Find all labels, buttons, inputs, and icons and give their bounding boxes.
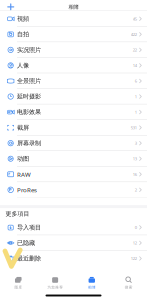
button[interactable]: 导入项目 [0, 220, 147, 235]
staticText: 图库 [14, 285, 22, 289]
button[interactable]: 为您推荐 [37, 275, 74, 290]
staticText: 6 [135, 78, 137, 84]
button[interactable]: 截屏 [0, 120, 147, 135]
button[interactable]: 相簿 [73, 275, 110, 290]
staticText: 动图 [17, 155, 29, 163]
staticText: 相簿 [68, 3, 78, 10]
button[interactable]: 屏幕录制 [0, 135, 147, 151]
staticText: 已隐藏 [17, 239, 35, 247]
staticText: 搜索 [125, 285, 133, 289]
button[interactable]: 电影效果 [0, 104, 147, 120]
staticText: 自拍 [17, 30, 29, 38]
staticText: 531 [131, 125, 137, 130]
staticText: 1 [135, 94, 137, 99]
staticText: 更多項目 [5, 210, 29, 218]
staticText: 13 [133, 156, 137, 161]
staticText: 22 [133, 47, 137, 53]
button[interactable]: 視頻 [0, 11, 147, 27]
button[interactable]: 全景照片 [0, 73, 147, 89]
staticText: 全景照片 [17, 77, 41, 85]
button[interactable]: 已隐藏 [0, 235, 147, 251]
staticText: 3 [135, 140, 137, 146]
staticText: 122 [131, 256, 137, 261]
staticText: RAW [17, 170, 31, 178]
button[interactable]: 延时摄影 [0, 89, 147, 104]
staticText: 为您推荐 [47, 285, 63, 289]
staticText: 相簿 [88, 285, 96, 289]
staticText: 422 [131, 31, 137, 37]
staticText: 人像 [17, 62, 29, 69]
staticText: ProRes [17, 186, 37, 194]
staticText: 16 [133, 171, 137, 177]
staticText: 45 [133, 16, 137, 22]
staticText: 截屏 [17, 124, 29, 131]
button[interactable]: 人像 [0, 58, 147, 73]
staticText: 最近删除 [17, 255, 41, 262]
staticText: 12 [133, 240, 137, 246]
staticText: 电影效果 [17, 108, 41, 116]
staticText: 屏幕录制 [17, 139, 41, 147]
button[interactable]: 动图 [0, 151, 147, 167]
button[interactable]: 实况照片 [0, 42, 147, 58]
button[interactable]: New Album [0, 2, 18, 12]
staticText: 視頻 [17, 15, 29, 23]
staticText: 导入项目 [17, 223, 41, 231]
button[interactable]: RAW [0, 166, 147, 182]
button[interactable]: 搜索 [110, 275, 147, 290]
button[interactable]: 自拍 [0, 27, 147, 42]
button[interactable]: ProRes [0, 182, 147, 198]
staticText: 2 [135, 187, 137, 193]
staticText: 0 [135, 225, 137, 230]
button[interactable]: 最近删除 [0, 251, 147, 266]
staticText: 延时摄影 [17, 93, 41, 100]
staticText: 1 [135, 109, 137, 115]
staticText: 实况照片 [17, 46, 41, 54]
button[interactable]: 图库 [0, 275, 37, 290]
staticText: 14 [133, 63, 137, 68]
